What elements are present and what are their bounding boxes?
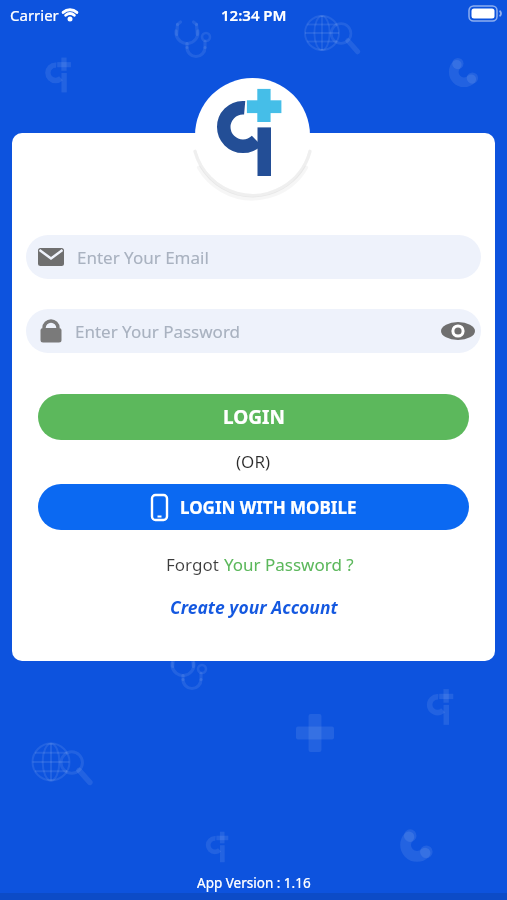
button[interactable]: Enter Your Email <box>26 235 481 279</box>
staticText: LOGIN <box>223 404 285 430</box>
staticText: (OR) <box>236 450 271 473</box>
staticText: 12:34 PM <box>221 5 287 25</box>
staticText: Carrier <box>10 5 59 25</box>
button[interactable]: Create your Account <box>170 595 338 619</box>
staticText: Forgot <box>166 553 224 576</box>
staticText: App Version : 1.16 <box>197 874 311 892</box>
staticText: Your Password ? <box>224 553 354 576</box>
staticText: LOGIN WITH MOBILE <box>180 496 357 519</box>
button[interactable]: LOGIN <box>38 394 469 440</box>
button[interactable]: LOGIN WITH MOBILE <box>38 484 469 530</box>
staticText: Enter Your Password <box>75 320 241 343</box>
button[interactable]: Forgot <box>166 553 354 576</box>
staticText: Enter Your Email <box>77 246 209 269</box>
button[interactable]: Enter Your Password <box>26 309 481 353</box>
button[interactable] <box>441 321 475 341</box>
